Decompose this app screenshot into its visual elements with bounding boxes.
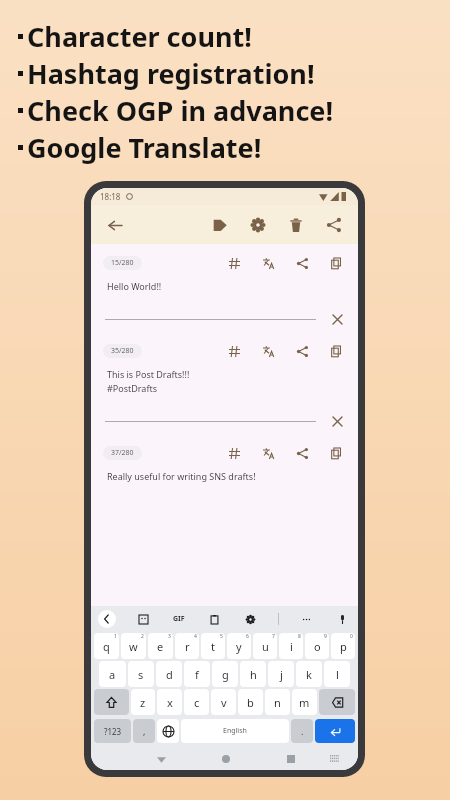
button[interactable]: j — [268, 661, 294, 687]
button[interactable]: l — [324, 661, 350, 687]
button[interactable]: ?123 — [94, 719, 131, 743]
button[interactable]: n — [265, 689, 290, 715]
button[interactable]: Share — [292, 341, 312, 361]
button[interactable]: Expand — [98, 610, 116, 628]
staticText: Character count! — [27, 18, 252, 55]
button[interactable]: Shift — [94, 689, 129, 715]
button[interactable]: , — [133, 719, 155, 743]
staticText: 35/280 — [111, 346, 134, 356]
staticText: g — [222, 667, 229, 682]
button[interactable]: c — [184, 689, 209, 715]
button[interactable]: Clipboard — [206, 611, 223, 628]
staticText: c — [194, 695, 200, 710]
button[interactable]: Close — [328, 310, 346, 328]
staticText: . — [301, 725, 304, 737]
staticText: e — [157, 639, 164, 654]
staticText: b — [247, 695, 254, 710]
staticText: q — [103, 639, 110, 654]
button[interactable]: 3 — [148, 633, 173, 659]
button[interactable]: Home — [217, 750, 235, 768]
staticText: l — [336, 667, 339, 682]
button[interactable]: English — [181, 719, 289, 743]
button[interactable]: 37/280 — [103, 446, 142, 460]
button[interactable]: 7 — [253, 633, 277, 659]
button[interactable]: Share — [292, 253, 312, 273]
button[interactable]: Settings — [245, 212, 271, 238]
button[interactable]: b — [238, 689, 263, 715]
button[interactable]: Keyboard settings — [242, 611, 259, 628]
button[interactable]: 15/280 — [103, 256, 142, 270]
staticText: This is Post Drafts!!! — [107, 368, 190, 380]
button[interactable]: Backspace — [319, 689, 355, 715]
staticText: v — [221, 695, 227, 710]
button[interactable]: Back — [152, 750, 170, 768]
staticText: m — [299, 695, 310, 710]
button[interactable]: Close — [328, 412, 346, 430]
button[interactable]: Recents — [282, 750, 300, 768]
staticText: 8 — [298, 633, 301, 640]
button[interactable]: k — [296, 661, 322, 687]
staticText: u — [262, 639, 269, 654]
staticText: #PostDrafts — [107, 382, 158, 394]
staticText: 15/280 — [111, 258, 134, 268]
button[interactable]: h — [240, 661, 266, 687]
button[interactable]: Copy — [326, 443, 346, 463]
button[interactable]: Emoji — [135, 611, 152, 628]
button[interactable]: Delete — [283, 212, 309, 238]
button[interactable]: 5 — [201, 633, 225, 659]
staticText: English — [223, 726, 247, 736]
button[interactable]: v — [211, 689, 236, 715]
button[interactable]: d — [156, 661, 182, 687]
staticText: 6 — [246, 633, 249, 640]
button[interactable]: 35/280 — [103, 344, 142, 358]
button[interactable]: 6 — [227, 633, 251, 659]
staticText: 18:18 — [100, 191, 121, 202]
button[interactable]: m — [292, 689, 317, 715]
button[interactable]: 4 — [175, 633, 199, 659]
staticText: a — [109, 667, 116, 682]
staticText: j — [280, 667, 283, 682]
button[interactable]: More — [298, 611, 315, 628]
button[interactable]: GIF — [171, 612, 187, 626]
button[interactable]: Hashtag — [224, 341, 244, 361]
button[interactable]: 0 — [331, 633, 355, 659]
button[interactable]: g — [212, 661, 238, 687]
button[interactable]: Voice input — [334, 611, 351, 628]
button[interactable]: Translate — [258, 443, 278, 463]
staticText: Check OGP in advance! — [27, 92, 334, 129]
button[interactable]: Translate — [258, 341, 278, 361]
button[interactable]: 1 — [94, 633, 119, 659]
button[interactable]: Hide keyboard — [326, 751, 342, 767]
button[interactable]: Back — [102, 212, 128, 238]
button[interactable]: Translate — [258, 253, 278, 273]
button[interactable]: Copy — [326, 253, 346, 273]
button[interactable]: s — [128, 661, 154, 687]
button[interactable]: a — [99, 661, 126, 687]
button[interactable]: 2 — [121, 633, 146, 659]
staticText: Hashtag registration! — [27, 55, 315, 92]
staticText: h — [250, 667, 257, 682]
button[interactable]: Hashtag — [224, 253, 244, 273]
staticText: 37/280 — [111, 448, 134, 458]
button[interactable]: Tag — [207, 212, 233, 238]
button[interactable]: Share — [321, 212, 347, 238]
staticText: o — [314, 639, 321, 654]
staticText: 3 — [168, 633, 171, 640]
button[interactable]: 8 — [279, 633, 303, 659]
staticText: 9 — [324, 633, 327, 640]
staticText: p — [340, 639, 347, 654]
staticText: 4 — [194, 633, 197, 640]
button[interactable]: Enter — [315, 719, 355, 743]
button[interactable]: Language — [157, 719, 179, 743]
button[interactable]: Copy — [326, 341, 346, 361]
button[interactable]: Hashtag — [224, 443, 244, 463]
staticText: 5 — [220, 633, 223, 640]
staticText: , — [143, 725, 146, 737]
button[interactable]: 9 — [305, 633, 329, 659]
button[interactable]: Share — [292, 443, 312, 463]
button[interactable]: z — [131, 689, 155, 715]
button[interactable]: x — [157, 689, 182, 715]
button[interactable]: f — [184, 661, 210, 687]
staticText: n — [274, 695, 281, 710]
button[interactable]: . — [291, 719, 313, 743]
